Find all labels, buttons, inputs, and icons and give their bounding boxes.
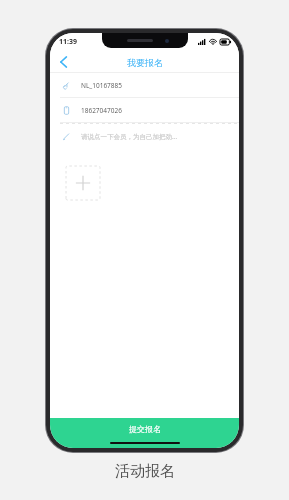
staticText: NL_10167885 (81, 81, 122, 90)
button[interactable]: NL_10167885 (50, 73, 239, 97)
button[interactable]: Back (50, 51, 76, 73)
staticText: 11:39 (59, 37, 77, 47)
button[interactable]: 请说点一下会员，为自己加把劲… (50, 124, 239, 148)
staticText: 提交报名 (129, 424, 161, 434)
button[interactable]: Add photo (66, 166, 100, 200)
staticText: 请说点一下会员，为自己加把劲… (81, 132, 178, 141)
staticText: 18627047026 (81, 106, 122, 115)
button[interactable]: 提交报名 (50, 418, 239, 448)
staticText: 我要报名 (127, 57, 163, 68)
button[interactable]: 18627047026 (50, 98, 239, 122)
staticText: 活动报名 (115, 462, 175, 481)
